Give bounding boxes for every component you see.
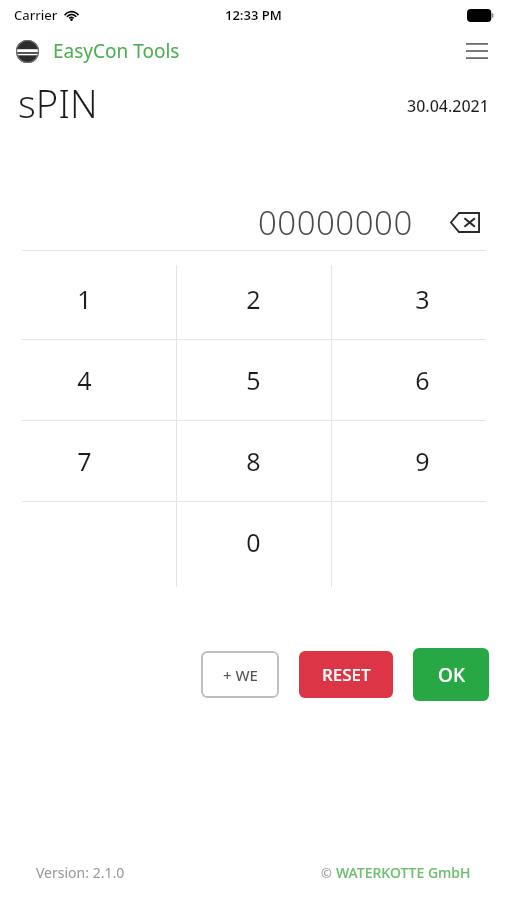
button[interactable]: EasyCon Tools xyxy=(16,38,180,64)
button[interactable]: Backspace xyxy=(443,204,487,240)
staticText: 5 xyxy=(246,363,261,397)
button[interactable]: OK xyxy=(413,648,489,701)
button[interactable]: 1 xyxy=(0,259,169,339)
staticText: 3 xyxy=(415,282,430,316)
button[interactable]: 5 xyxy=(169,340,338,420)
button[interactable]: 8 xyxy=(169,421,338,501)
staticText: 9 xyxy=(415,444,430,478)
staticText: OK xyxy=(438,662,465,688)
staticText: 12:33 PM xyxy=(225,6,282,24)
staticText: sPIN xyxy=(18,77,98,129)
staticText: WATERKOTTE GmbH xyxy=(336,863,471,882)
staticText: Carrier xyxy=(14,6,58,24)
staticText: EasyCon Tools xyxy=(53,38,180,64)
staticText: 7 xyxy=(77,444,92,478)
staticText: + WE xyxy=(223,665,258,685)
staticText: 00000000 xyxy=(258,200,413,245)
staticText: 4 xyxy=(77,363,92,397)
staticText: RESET xyxy=(322,663,371,686)
button[interactable]: Menu xyxy=(459,33,495,69)
button[interactable]: + WE xyxy=(201,651,279,698)
button[interactable]: RESET xyxy=(299,651,393,698)
staticText: 6 xyxy=(415,363,430,397)
staticText: 1 xyxy=(77,282,92,316)
button[interactable]: 0 xyxy=(169,502,338,582)
staticText: Version: 2.1.0 xyxy=(36,863,125,882)
staticText: © xyxy=(321,864,332,882)
button[interactable]: 4 xyxy=(0,340,169,420)
staticText: 8 xyxy=(246,444,261,478)
staticText: 30.04.2021 xyxy=(407,95,489,117)
staticText: 2 xyxy=(246,282,261,316)
button[interactable]: 7 xyxy=(0,421,169,501)
staticText: 0 xyxy=(246,525,261,559)
button[interactable]: 9 xyxy=(338,421,507,501)
button[interactable]: 3 xyxy=(338,259,507,339)
button[interactable]: 2 xyxy=(169,259,338,339)
button[interactable]: 6 xyxy=(338,340,507,420)
